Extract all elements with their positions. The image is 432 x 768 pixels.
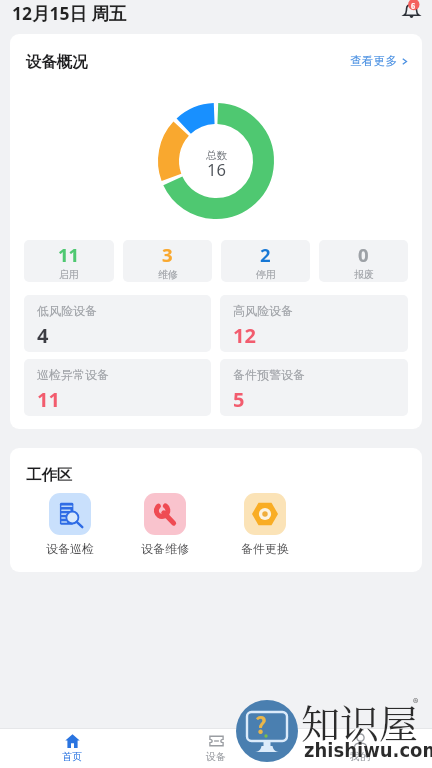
staticText: 报废: [354, 268, 374, 281]
staticText: 3: [162, 242, 173, 267]
staticText: 维修: [158, 268, 178, 281]
button[interactable]: 查看更多: [350, 54, 408, 69]
button[interactable]: 备件预警设备: [220, 359, 408, 416]
button[interactable]: 巡检异常设备: [24, 359, 211, 416]
staticText: zhishiwu.com: [304, 738, 432, 761]
staticText: 启用: [59, 268, 79, 281]
staticText: 12: [233, 322, 256, 349]
staticText: 总数: [206, 149, 227, 162]
button[interactable]: 设备维修: [117, 493, 212, 556]
staticText: 设备: [206, 750, 226, 763]
button[interactable]: 低风险设备: [24, 295, 211, 352]
staticText: 12月15日 周五: [12, 1, 127, 25]
staticText: 工作区: [26, 465, 73, 484]
staticText: 我的: [350, 750, 370, 763]
staticText: 设备巡检: [46, 541, 94, 556]
button[interactable]: 我的: [288, 729, 432, 763]
staticText: 查看更多: [350, 54, 398, 69]
button[interactable]: Notifications: [401, 0, 421, 19]
staticText: 16: [207, 158, 226, 180]
staticText: 设备概况: [26, 52, 88, 71]
staticText: 知识屋: [301, 693, 419, 749]
staticText: 11: [58, 242, 80, 267]
staticText: 设备维修: [141, 541, 189, 556]
staticText: ?: [255, 707, 267, 740]
staticText: 11: [37, 386, 60, 413]
button[interactable]: 3: [123, 240, 212, 282]
staticText: 5: [233, 386, 245, 413]
button[interactable]: 高风险设备: [220, 295, 408, 352]
staticText: 首页: [62, 750, 82, 763]
staticText: 低风险设备: [37, 303, 97, 318]
button[interactable]: 2: [221, 240, 310, 282]
button[interactable]: 首页: [0, 729, 144, 763]
button[interactable]: 备件更换: [217, 493, 312, 556]
staticText: 备件更换: [241, 541, 289, 556]
button[interactable]: 设备: [144, 729, 288, 763]
button[interactable]: 11: [24, 240, 114, 282]
staticText: 备件预警设备: [233, 367, 305, 382]
staticText: 高风险设备: [233, 303, 293, 318]
staticText: 停用: [256, 268, 276, 281]
button[interactable]: 0: [319, 240, 408, 282]
staticText: 巡检异常设备: [37, 367, 109, 382]
staticText: ®: [413, 694, 419, 710]
button[interactable]: 设备巡检: [22, 493, 117, 556]
staticText: 2: [260, 242, 271, 267]
staticText: 0: [358, 242, 369, 267]
staticText: 4: [37, 322, 49, 349]
staticText: 6: [411, 1, 416, 11]
